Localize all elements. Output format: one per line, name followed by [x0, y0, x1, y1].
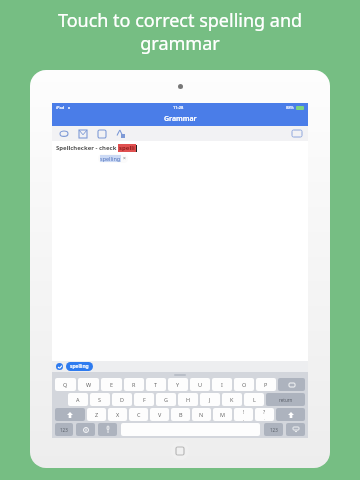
button[interactable]: Emoji: [76, 423, 95, 436]
staticText: !: [243, 409, 245, 416]
staticText: ?: [263, 409, 266, 416]
button[interactable]: Shift right: [276, 408, 305, 421]
button[interactable]: I: [212, 378, 232, 391]
staticText: V: [158, 411, 162, 418]
button[interactable]: return: [266, 393, 305, 406]
staticText: W: [86, 381, 92, 388]
staticText: J: [209, 396, 211, 403]
staticText: ,: [243, 416, 245, 421]
button[interactable]: X: [108, 408, 127, 421]
staticText: 88%: [286, 105, 294, 110]
staticText: P: [264, 381, 268, 388]
button[interactable]: ?: [255, 408, 274, 421]
button[interactable]: J: [200, 393, 220, 406]
staticText: spelling: [100, 155, 121, 162]
staticText: U: [198, 381, 203, 388]
staticText: spelli: [119, 144, 135, 152]
button[interactable]: T: [146, 378, 166, 391]
staticText: G: [164, 396, 169, 403]
button[interactable]: Accept correction: [56, 363, 63, 370]
button[interactable]: V: [150, 408, 169, 421]
button[interactable]: Document: [96, 128, 107, 139]
button[interactable]: Backspace: [278, 378, 305, 391]
button[interactable]: Hide keyboard: [292, 130, 302, 137]
button[interactable]: Dictation: [98, 423, 117, 436]
staticText: S: [98, 396, 102, 403]
button[interactable]: H: [178, 393, 198, 406]
button[interactable]: L: [244, 393, 264, 406]
staticText: N: [199, 411, 204, 418]
button[interactable]: !: [234, 408, 253, 421]
staticText: 123: [60, 427, 68, 433]
button[interactable]: W: [78, 378, 99, 391]
staticText: R: [132, 381, 136, 388]
button[interactable]: Shift: [55, 408, 85, 421]
button[interactable]: F: [134, 393, 154, 406]
button[interactable]: D: [112, 393, 132, 406]
staticText: M: [220, 411, 225, 418]
staticText: K: [230, 396, 234, 403]
button[interactable]: C: [129, 408, 148, 421]
staticText: B: [179, 411, 183, 418]
button[interactable]: Check spelling: [115, 128, 126, 139]
staticText: Q: [63, 381, 68, 388]
button[interactable]: K: [222, 393, 242, 406]
button[interactable]: spelling: [66, 362, 93, 371]
button[interactable]: Y: [168, 378, 188, 391]
staticText: Y: [176, 381, 180, 388]
staticText: H: [186, 396, 191, 403]
button[interactable]: Q: [55, 378, 76, 391]
staticText: spelling: [70, 363, 89, 370]
button[interactable]: Chat: [58, 128, 69, 139]
staticText: .: [264, 416, 266, 421]
button[interactable]: Mail: [77, 128, 88, 139]
staticText: Touch to correct spelling and grammar: [20, 8, 340, 55]
staticText: I: [221, 381, 223, 388]
staticText: 123: [270, 427, 278, 433]
staticText: O: [242, 381, 247, 388]
staticText: iPad: [56, 105, 65, 110]
staticText: 11:28: [173, 105, 184, 110]
button[interactable]: S: [90, 393, 110, 406]
staticText: ×: [123, 155, 126, 162]
button[interactable]: 123: [264, 423, 283, 436]
staticText: Z: [95, 411, 99, 418]
staticText: E: [110, 381, 114, 388]
staticText: X: [116, 411, 120, 418]
button[interactable]: Dismiss keyboard: [286, 423, 305, 436]
button[interactable]: G: [156, 393, 176, 406]
staticText: Grammar: [164, 114, 197, 124]
button[interactable]: E: [101, 378, 122, 391]
button[interactable]: R: [124, 378, 144, 391]
button[interactable]: 123: [55, 423, 73, 436]
button[interactable]: B: [171, 408, 190, 421]
button[interactable]: A: [68, 393, 88, 406]
staticText: F: [143, 396, 146, 403]
staticText: T: [154, 381, 158, 388]
button[interactable]: P: [256, 378, 276, 391]
button[interactable]: N: [192, 408, 211, 421]
staticText: C: [137, 411, 141, 418]
button[interactable]: M: [213, 408, 232, 421]
button[interactable]: spelling: [98, 154, 128, 163]
staticText: L: [253, 396, 256, 403]
staticText: A: [76, 396, 80, 403]
staticText: Spellchecker - check: [56, 144, 118, 152]
staticText: D: [120, 396, 125, 403]
button[interactable]: O: [234, 378, 254, 391]
staticText: return: [279, 397, 293, 403]
button[interactable]: U: [190, 378, 210, 391]
button[interactable]: Z: [87, 408, 106, 421]
